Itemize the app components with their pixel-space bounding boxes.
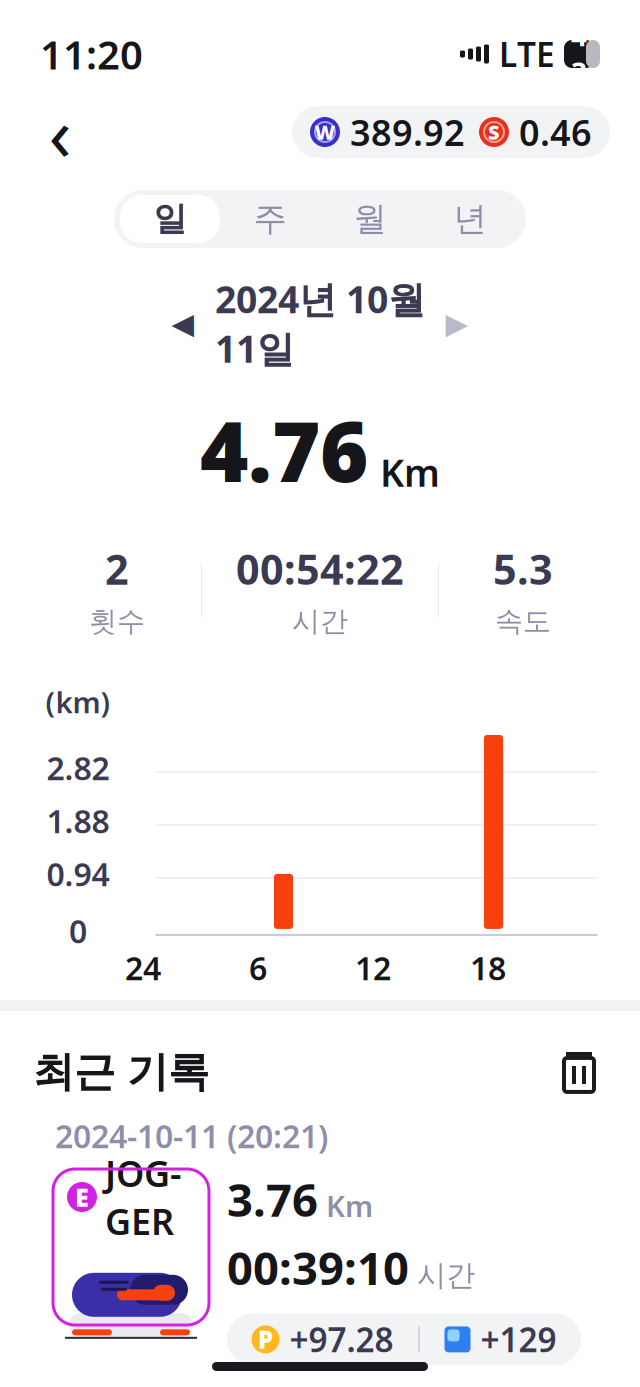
staticText: 0.46 bbox=[519, 108, 592, 156]
staticText: 시간 bbox=[292, 604, 348, 639]
staticText: 월 bbox=[353, 198, 386, 239]
staticText: Km bbox=[326, 1186, 373, 1225]
staticText: 389.92 bbox=[350, 108, 465, 156]
staticText: 18 bbox=[470, 947, 506, 989]
button[interactable]: 월 bbox=[320, 191, 420, 247]
staticText: +97.28 bbox=[289, 1317, 393, 1362]
button[interactable]: Delete records bbox=[551, 1044, 607, 1100]
button[interactable]: Back bbox=[30, 102, 90, 162]
staticText: 주 bbox=[253, 198, 286, 239]
staticText: 00:39:10 bbox=[227, 1237, 409, 1297]
staticText: W bbox=[314, 119, 335, 145]
staticText: ◀ bbox=[171, 307, 194, 340]
staticText: 0 bbox=[69, 910, 87, 952]
staticText: 1.88 bbox=[46, 800, 109, 842]
staticText: 최근 기록 bbox=[33, 1047, 209, 1097]
staticText: 0.94 bbox=[46, 853, 109, 895]
staticText: ‹ bbox=[48, 82, 71, 182]
button[interactable]: 2024-10-11 (20:21) bbox=[33, 1119, 607, 1349]
staticText: 2 bbox=[105, 541, 129, 596]
staticText: 00:54:22 bbox=[236, 541, 404, 596]
staticText: 11:20 bbox=[40, 27, 143, 80]
staticText: P bbox=[258, 1323, 273, 1355]
staticText: 일 bbox=[153, 198, 186, 239]
staticText: 12 bbox=[355, 947, 391, 989]
button[interactable]: 주 bbox=[220, 191, 320, 247]
staticText: 3.76 bbox=[227, 1169, 318, 1229]
staticText: 횟수 bbox=[89, 604, 145, 639]
staticText: S bbox=[488, 119, 500, 145]
staticText: ▶ bbox=[445, 307, 468, 340]
staticText: 4.76 bbox=[200, 395, 368, 505]
staticText: Km bbox=[380, 447, 440, 497]
staticText: 5.3 bbox=[493, 541, 553, 596]
staticText: 6 bbox=[249, 947, 267, 989]
staticText: 43 bbox=[571, 17, 587, 91]
staticText: 2024년 10월 11일 bbox=[215, 274, 425, 373]
staticText: 2.82 bbox=[46, 747, 109, 789]
button[interactable]: Next day bbox=[430, 300, 484, 348]
staticText: (km) bbox=[45, 682, 110, 721]
staticText: +129 bbox=[480, 1317, 556, 1362]
button[interactable]: Previous day bbox=[156, 300, 210, 348]
staticText: 24 bbox=[125, 947, 161, 989]
staticText: 시간 bbox=[417, 1257, 475, 1293]
staticText: 속도 bbox=[495, 604, 551, 639]
staticText: LTE bbox=[499, 32, 555, 76]
button[interactable]: 일 bbox=[120, 191, 220, 247]
staticText: JOGGER bbox=[105, 1149, 182, 1245]
staticText: 년 bbox=[453, 198, 486, 239]
button[interactable]: W bbox=[292, 106, 610, 158]
staticText: E bbox=[75, 1180, 89, 1214]
button[interactable]: 년 bbox=[420, 191, 520, 247]
staticText: 2024-10-11 (20:21) bbox=[55, 1114, 328, 1157]
